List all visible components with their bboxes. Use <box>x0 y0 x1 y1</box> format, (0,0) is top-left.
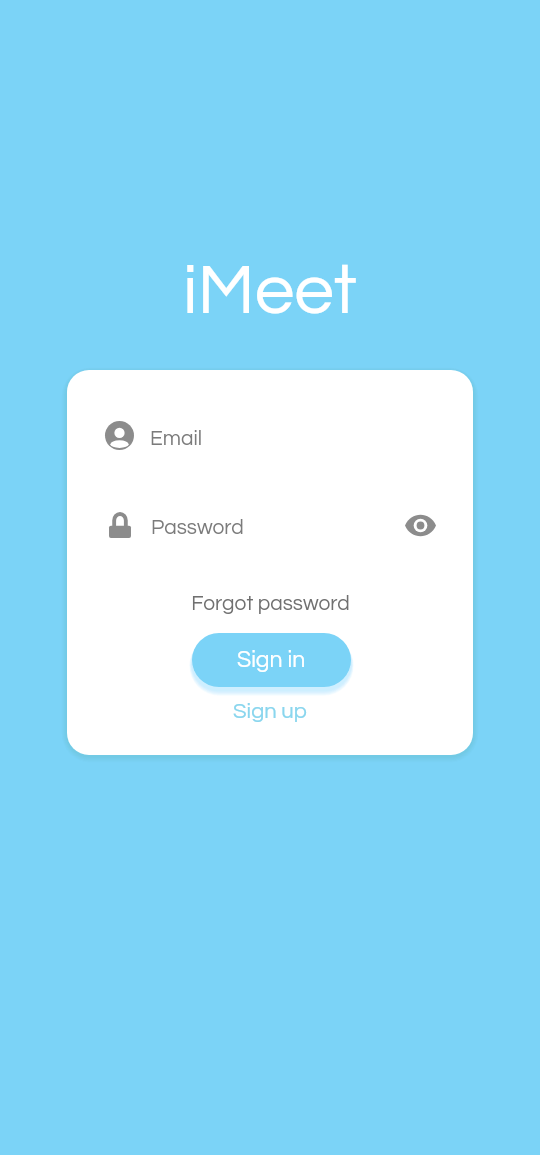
staticText: iMeet <box>0 255 540 328</box>
staticText: Email <box>150 428 203 450</box>
staticText: Sign up <box>233 700 307 723</box>
staticText: Password <box>151 517 244 539</box>
button[interactable]: Sign up <box>67 693 473 729</box>
staticText: Forgot password <box>191 593 350 615</box>
button[interactable]: Forgot password <box>67 586 473 622</box>
button[interactable]: Sign in <box>192 633 351 687</box>
staticText: Sign in <box>237 648 306 672</box>
button[interactable]: Email <box>67 414 473 464</box>
button[interactable]: Show password <box>397 504 443 550</box>
button[interactable]: Password <box>67 502 473 552</box>
